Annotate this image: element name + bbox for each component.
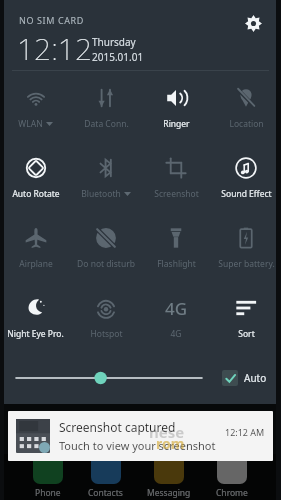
- staticText: NO SIM CARD: [19, 14, 84, 26]
- button[interactable]: Flashlight: [141, 213, 211, 283]
- button[interactable]: Auto Rotate: [0, 143, 71, 213]
- button[interactable]: Super battery.: [211, 213, 281, 283]
- button[interactable]: Chrome: [216, 454, 248, 500]
- button[interactable]: Location: [211, 73, 281, 143]
- staticText: Super battery.: [218, 258, 275, 270]
- button[interactable]: WLAN: [0, 73, 71, 143]
- button[interactable]: Data Conn.: [71, 73, 141, 143]
- button[interactable]: [14, 363, 204, 393]
- button[interactable]: Night Eye Pro.: [0, 283, 71, 353]
- staticText: Sound Effect: [221, 188, 272, 200]
- staticText: 12:12 AM: [225, 426, 265, 438]
- button[interactable]: Sort: [211, 283, 281, 353]
- staticText: rom: [156, 434, 185, 453]
- staticText: Screenshot: [154, 188, 199, 200]
- button[interactable]: Screenshot: [141, 143, 211, 213]
- staticText: Auto: [244, 371, 267, 385]
- staticText: Messaging: [147, 487, 191, 499]
- staticText: Screenshot captured: [59, 419, 176, 435]
- staticText: Chrome: [216, 487, 248, 499]
- staticText: 2015.01.01: [92, 50, 144, 64]
- staticText: Touch to view your screenshot: [59, 438, 216, 453]
- staticText: Hotspot: [90, 328, 123, 340]
- staticText: Flashlight: [157, 258, 196, 270]
- staticText: Sort: [238, 328, 255, 340]
- button[interactable]: Ringer: [141, 73, 211, 143]
- staticText: WLAN: [18, 118, 43, 130]
- button[interactable]: Settings: [238, 8, 268, 38]
- button[interactable]: Sound Effect: [211, 143, 281, 213]
- staticText: Auto Rotate: [12, 188, 60, 200]
- staticText: Bluetooth: [81, 188, 121, 200]
- staticText: 4G: [165, 297, 188, 320]
- button[interactable]: Screenshot captured: [8, 411, 273, 461]
- button[interactable]: Hotspot: [71, 283, 141, 353]
- button[interactable]: Airplane: [0, 213, 71, 283]
- staticText: Location: [229, 118, 264, 130]
- button[interactable]: Messaging: [147, 454, 191, 500]
- staticText: Contacts: [88, 487, 123, 499]
- button[interactable]: Phone: [33, 454, 63, 500]
- button[interactable]: 4G: [141, 283, 211, 353]
- staticText: Phone: [35, 487, 61, 499]
- staticText: Do not disturb: [77, 258, 135, 270]
- staticText: Thursday: [92, 35, 136, 49]
- button[interactable]: Do not disturb: [71, 213, 141, 283]
- staticText: Night Eye Pro.: [7, 328, 64, 340]
- staticText: Ringer: [163, 118, 190, 130]
- staticText: Airplane: [19, 258, 53, 270]
- button[interactable]: Bluetooth: [71, 143, 141, 213]
- staticText: nese: [149, 422, 185, 442]
- staticText: 4G: [170, 328, 182, 340]
- staticText: 12:12: [17, 28, 92, 69]
- staticText: Data Conn.: [84, 118, 129, 130]
- button[interactable]: Auto: [222, 370, 267, 386]
- button[interactable]: Contacts: [88, 454, 123, 500]
